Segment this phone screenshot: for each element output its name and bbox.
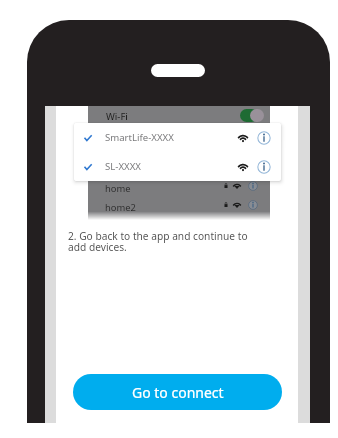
button[interactable]: home2: [88, 198, 270, 214]
staticText: SmartLife-XXXX: [105, 131, 174, 144]
staticText: SL-XXXX: [105, 160, 141, 173]
button[interactable]: SmartLife-XXXX: [74, 124, 281, 152]
button[interactable]: home: [88, 179, 270, 195]
button[interactable]: SL-XXXX: [74, 153, 281, 181]
staticText: Go to connect: [132, 383, 224, 402]
button[interactable]: Wi-Fi on: [240, 109, 264, 122]
staticText: home: [105, 182, 131, 195]
button[interactable]: Go to connect: [73, 374, 282, 410]
staticText: Wi-Fi: [106, 110, 128, 123]
staticText: home2: [105, 201, 136, 214]
staticText: 2. Go back to the app and continue to ad…: [68, 229, 248, 254]
